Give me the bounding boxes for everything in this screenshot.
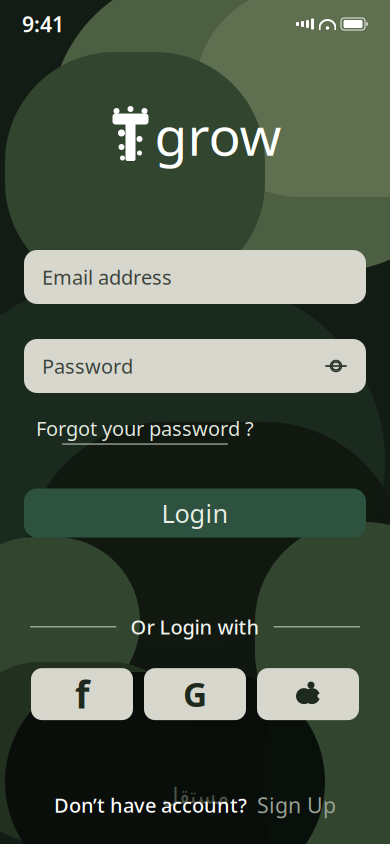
staticText: Or Login with	[130, 614, 259, 640]
staticText: Password	[42, 353, 133, 379]
button[interactable]: Forgot your password ?	[36, 415, 254, 445]
staticText: grow	[154, 100, 281, 170]
button[interactable]: Google	[144, 668, 246, 720]
button[interactable]: Password	[24, 339, 366, 393]
staticText: f	[75, 669, 89, 719]
staticText: Sign Up	[257, 791, 336, 819]
button[interactable]: Sign Up	[257, 791, 336, 819]
button[interactable]: Facebook	[31, 668, 133, 720]
button[interactable]: Email address	[24, 250, 366, 304]
staticText: Don’t have account?	[54, 792, 247, 818]
button[interactable]: Apple	[257, 668, 359, 720]
staticText: Login	[161, 496, 228, 530]
staticText: 9:41	[22, 10, 64, 38]
staticText: G	[183, 672, 207, 716]
staticText: مستقل	[161, 783, 228, 809]
staticText: Forgot your password ?	[36, 415, 254, 442]
staticText: Email address	[42, 264, 172, 290]
button[interactable]: Login	[24, 489, 366, 538]
